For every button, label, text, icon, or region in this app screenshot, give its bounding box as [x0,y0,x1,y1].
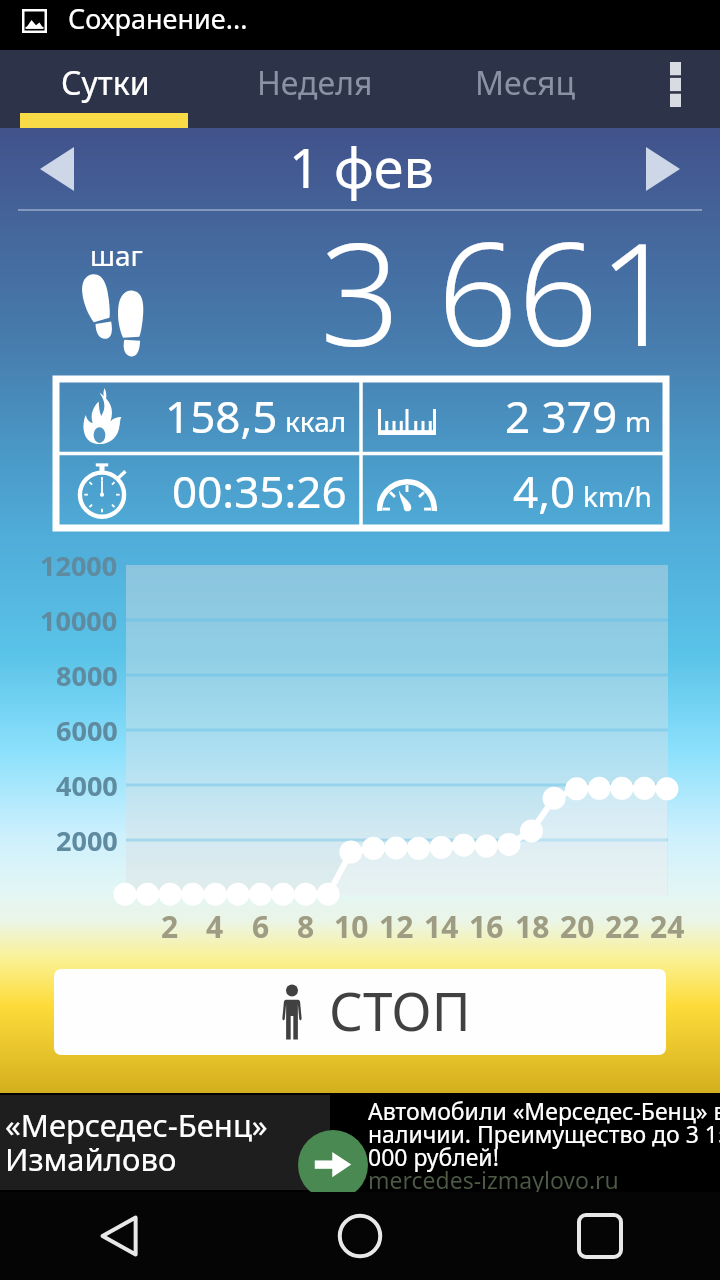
button[interactable]: 00:35:26 [56,453,361,528]
staticText: 14 [424,906,459,947]
button[interactable]: «Мерседес-Бенц» [0,1095,330,1190]
staticText: Неделя [257,61,373,105]
button[interactable]: 2 379 [361,379,666,453]
button[interactable]: Месяц [420,50,630,128]
staticText: m [625,402,652,440]
staticText: Измайлово [5,1138,177,1180]
staticText: Автомобили «Мерседес-Бенц» в [368,1095,720,1126]
staticText: Месяц [475,61,576,105]
staticText: 12 [379,906,414,947]
button[interactable]: Recents [480,1192,720,1280]
staticText: 4,0 [513,461,576,521]
staticText: Сутки [61,61,150,105]
staticText: 12000 [40,547,118,584]
staticText: 00:35:26 [172,461,347,521]
staticText: 22 [605,906,640,947]
staticText: mercedes-izmaylovo.ru [368,1164,619,1195]
staticText: 3 661 [320,195,679,357]
button[interactable]: 158,5 [56,379,361,453]
button[interactable]: Home [240,1192,480,1280]
staticText: 1 фев [289,130,434,204]
staticText: ккал [285,402,347,440]
staticText: 2 379 [505,386,618,446]
staticText: 8000 [56,657,118,694]
button[interactable]: Next day [590,128,720,214]
staticText: 16 [469,906,504,947]
button[interactable]: Сутки [0,50,210,128]
button[interactable]: Неделя [210,50,420,128]
staticText: шаг [90,236,143,274]
button[interactable]: Автомобили «Мерседес-Бенц» в [330,1095,720,1190]
staticText: 10000 [40,602,118,639]
staticText: «Мерседес-Бенц» [5,1104,268,1146]
button[interactable]: 4,0 [361,453,666,528]
staticText: km/h [583,477,652,515]
staticText: 10 [334,906,369,947]
staticText: 2 [161,906,179,947]
staticText: 4000 [56,767,118,804]
button[interactable]: Back [0,1192,240,1280]
staticText: 4 [206,906,224,947]
staticText: 18 [515,906,550,947]
staticText: 000 рублей! [368,1141,499,1172]
staticText: Сохранение... [68,0,248,37]
button[interactable]: More options [630,50,720,128]
staticText: 6000 [56,712,118,749]
staticText: 8 [297,906,315,947]
staticText: наличии. Преимущество до 3 150 [368,1118,720,1149]
staticText: 2000 [56,822,118,859]
staticText: 6 [252,906,270,947]
button[interactable]: Previous day [0,128,130,214]
staticText: 20 [560,906,595,947]
staticText: СТОП [329,974,471,1046]
staticText: 24 [650,906,685,947]
button[interactable]: СТОП [54,969,666,1055]
button[interactable]: Open ad [298,1130,368,1200]
staticText: 158,5 [165,386,278,446]
